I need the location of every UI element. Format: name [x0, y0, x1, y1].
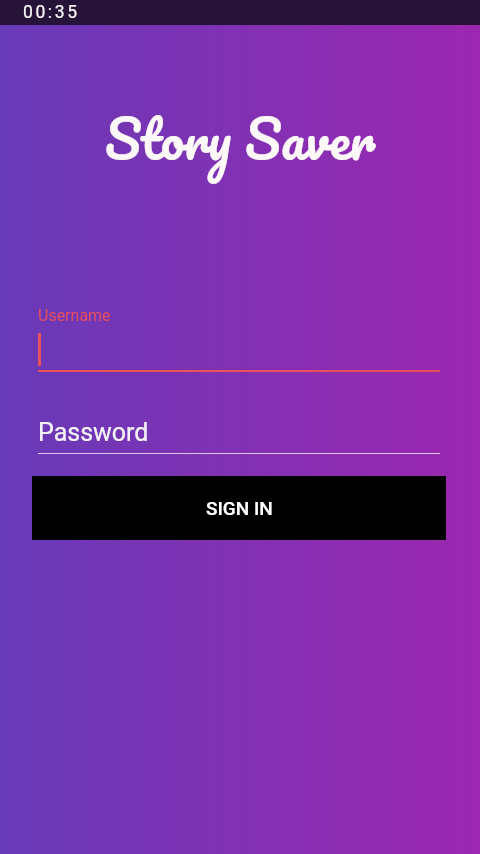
- button[interactable]: SIGN IN: [32, 476, 446, 540]
- button[interactable]: Username: [38, 303, 440, 372]
- staticText: Username: [38, 306, 111, 325]
- staticText: SIGN IN: [206, 497, 273, 519]
- staticText: Story Saver: [0, 92, 480, 183]
- staticText: Password: [38, 418, 149, 447]
- staticText: 00:35: [23, 2, 80, 23]
- button[interactable]: Password: [38, 372, 440, 454]
